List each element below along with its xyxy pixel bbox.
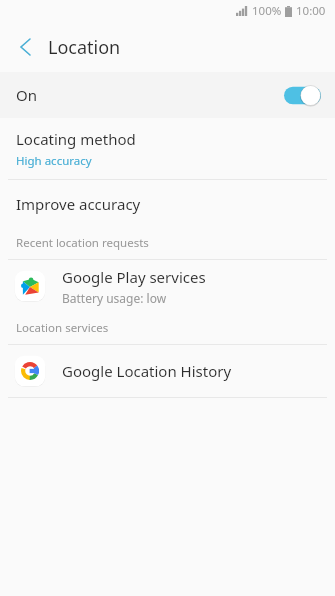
staticText: Location: [48, 35, 121, 60]
staticText: 100%: [252, 3, 282, 19]
staticText: Battery usage: low: [62, 290, 167, 306]
button[interactable]: On: [0, 72, 335, 118]
button[interactable]: Google Location History: [0, 345, 335, 397]
staticText: Recent location requests: [16, 235, 149, 251]
staticText: Location services: [16, 320, 109, 336]
staticText: Google Play services: [62, 267, 206, 287]
staticText: 10:00: [296, 3, 326, 19]
staticText: Google Location History: [62, 361, 232, 381]
staticText: Improve accuracy: [16, 194, 141, 214]
button[interactable]: Improve accuracy: [0, 180, 335, 227]
button[interactable]: Back: [8, 30, 42, 64]
button[interactable]: Google Play services: [0, 260, 335, 312]
staticText: On: [16, 85, 37, 105]
staticText: Locating method: [16, 129, 136, 149]
button[interactable]: Locating method: [0, 118, 335, 179]
staticText: High accuracy: [16, 153, 92, 169]
